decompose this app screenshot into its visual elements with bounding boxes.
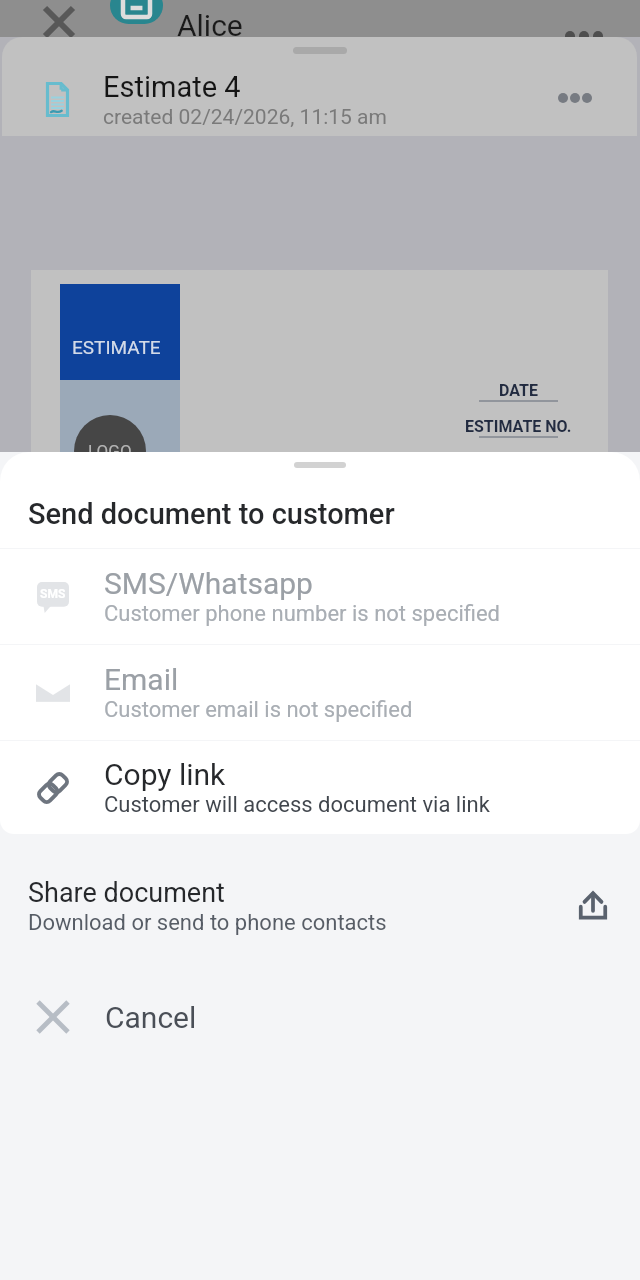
staticText: Send document to customer bbox=[28, 497, 395, 531]
button[interactable]: Email bbox=[0, 645, 640, 740]
staticText: DATE bbox=[499, 381, 538, 400]
button[interactable]: SMS bbox=[0, 549, 640, 644]
staticText: Share document bbox=[28, 877, 225, 909]
other: Close bbox=[45, 8, 73, 36]
staticText: Cancel bbox=[105, 1000, 197, 1035]
staticText: created 02/24/2026, 11:15 am bbox=[103, 105, 387, 130]
other: Cancel bbox=[38, 1002, 68, 1032]
staticText: ESTIMATE bbox=[72, 336, 161, 358]
staticText: Alice bbox=[177, 8, 243, 37]
staticText: Customer email is not specified bbox=[104, 697, 413, 723]
button[interactable]: Share document bbox=[0, 834, 640, 978]
button[interactable]: Copy link bbox=[0, 741, 640, 834]
button[interactable]: Cancel bbox=[0, 978, 640, 1056]
staticText: Customer phone number is not specified bbox=[104, 601, 501, 627]
staticText: Estimate 4 bbox=[103, 70, 241, 104]
other: Share bbox=[576, 889, 610, 923]
staticText: ESTIMATE NO. bbox=[465, 417, 572, 436]
staticText: Copy link bbox=[104, 757, 226, 792]
staticText: SMS bbox=[40, 587, 66, 601]
staticText: SMS/Whatsapp bbox=[104, 566, 313, 601]
staticText: Customer will access document via link bbox=[104, 792, 490, 818]
staticText: LOGO bbox=[88, 441, 132, 461]
staticText: Download or send to phone contacts bbox=[28, 910, 387, 936]
staticText: Email bbox=[104, 662, 179, 697]
